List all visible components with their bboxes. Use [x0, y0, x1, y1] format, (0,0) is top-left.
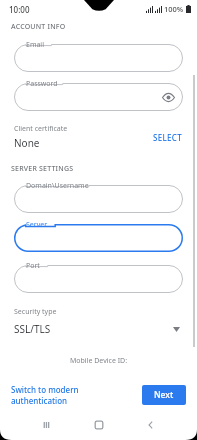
- staticText: SSL/TLS: [14, 322, 173, 336]
- button[interactable]: Password: [14, 83, 183, 111]
- staticText: Mobile Device ID:: [11, 356, 186, 366]
- button[interactable]: Home: [73, 410, 125, 440]
- staticText: Next: [154, 389, 174, 401]
- staticText: None: [14, 136, 40, 150]
- button[interactable]: Server: [14, 224, 183, 252]
- staticText: Password: [26, 79, 58, 89]
- staticText: Security type: [14, 307, 57, 317]
- button[interactable]: Email: [14, 44, 183, 72]
- button[interactable]: Recent apps: [20, 410, 73, 440]
- staticText: 100%: [164, 4, 184, 14]
- staticText: SERVER SETTINGS: [11, 164, 74, 174]
- staticText: Email: [26, 40, 44, 50]
- staticText: Domain\Username: [26, 181, 89, 191]
- button[interactable]: Domain\Username: [14, 185, 183, 213]
- staticText: SELECT: [153, 132, 182, 143]
- staticText: ACCOUNT INFO: [11, 22, 66, 32]
- staticText: Server: [26, 220, 48, 230]
- staticText: Switch to modern authentication: [11, 384, 136, 406]
- button[interactable]: Port: [14, 265, 183, 293]
- button[interactable]: Next: [142, 385, 186, 405]
- button[interactable]: Client certificate: [11, 124, 186, 150]
- button[interactable]: Back: [125, 410, 177, 440]
- button[interactable]: Show password: [162, 91, 175, 104]
- button[interactable]: Switch to modern authentication: [11, 384, 136, 406]
- staticText: 10:00: [9, 4, 30, 15]
- staticText: Port: [26, 261, 40, 271]
- button[interactable]: Security type: [11, 307, 186, 336]
- button[interactable]: SELECT: [149, 128, 186, 147]
- staticText: Client certificate: [14, 124, 68, 134]
